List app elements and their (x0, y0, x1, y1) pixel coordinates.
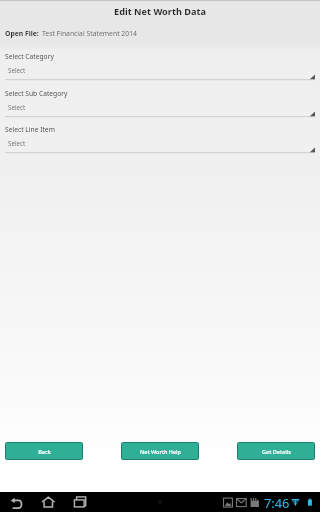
staticText: Edit Net Worth Data (114, 5, 207, 18)
staticText: Select (8, 139, 26, 147)
button[interactable]: Select (0, 100, 320, 116)
button[interactable]: Back (4, 492, 28, 512)
staticText: Select Category (5, 52, 54, 61)
staticText: Select Sub Category (5, 89, 68, 98)
button[interactable]: Get Details (237, 442, 315, 460)
button[interactable]: Select (0, 63, 320, 79)
staticText: Open File: (5, 29, 39, 38)
staticText: Test Financial Statement 2014 (42, 29, 137, 38)
staticText: 7:46 (264, 494, 290, 511)
staticText: Select (8, 66, 26, 74)
staticText: Back (38, 448, 51, 455)
button[interactable]: Recent apps (68, 492, 92, 512)
staticText: Select Line Item (5, 125, 55, 134)
staticText: Net Worth Help (140, 448, 181, 455)
button[interactable]: Back (5, 442, 83, 460)
button[interactable]: Net Worth Help (121, 442, 199, 460)
button[interactable]: Home (36, 492, 60, 512)
staticText: Get Details (262, 448, 291, 455)
staticText: Select (8, 103, 26, 111)
button[interactable]: Select (0, 136, 320, 152)
